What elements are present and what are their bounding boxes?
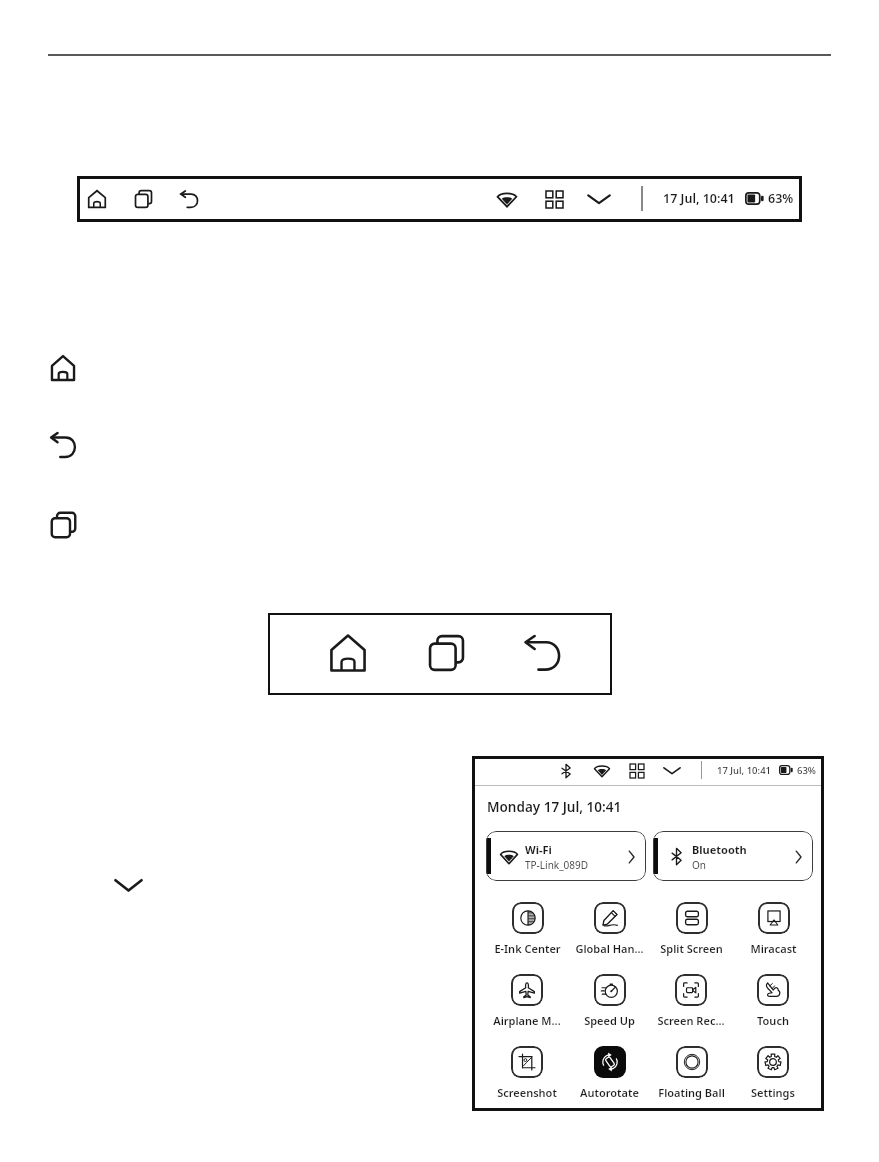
button[interactable]: Expand quick settings: [106, 863, 151, 907]
button[interactable]: Bluetooth: [554, 758, 578, 783]
button[interactable]: Home: [39, 343, 87, 393]
button[interactable]: Wi-Fi: [491, 183, 523, 215]
button[interactable]: Airplane M...: [487, 974, 567, 1032]
staticText: Airplane M...: [493, 1013, 561, 1028]
other: Open: [627, 850, 636, 864]
button[interactable]: Recent apps: [127, 183, 159, 215]
button[interactable]: Recent apps: [418, 625, 474, 681]
button[interactable]: Floating Ball: [651, 1046, 731, 1104]
staticText: Screen Rec...: [657, 1013, 725, 1028]
other: Battery 63 percent: [745, 192, 764, 205]
staticText: Settings: [751, 1085, 795, 1100]
staticText: Autorotate: [580, 1085, 639, 1100]
other: Wi-Fi: [500, 849, 518, 864]
staticText: Floating Ball: [658, 1085, 725, 1100]
button[interactable]: All apps: [538, 183, 570, 215]
staticText: Screenshot: [497, 1085, 557, 1100]
button[interactable]: Autorotate: [569, 1046, 649, 1104]
staticText: Speed Up: [584, 1013, 635, 1028]
other: Bluetooth: [671, 848, 682, 865]
staticText: 17 Jul, 10:41: [663, 190, 735, 207]
other: Open: [794, 850, 803, 864]
button[interactable]: Recent apps: [39, 500, 87, 550]
button[interactable]: Global Han...: [569, 902, 649, 960]
button[interactable]: Collapse quick settings: [660, 758, 684, 783]
button[interactable]: Touch: [733, 974, 813, 1032]
button[interactable]: Speed Up: [569, 974, 649, 1032]
staticText: E-Ink Center: [494, 941, 561, 956]
button[interactable]: Home: [81, 183, 113, 215]
staticText: 63%: [797, 764, 816, 777]
staticText: 63%: [768, 190, 794, 207]
staticText: Touch: [757, 1013, 789, 1028]
button[interactable]: E-Ink Center: [487, 902, 567, 960]
button[interactable]: Screen Rec...: [651, 974, 731, 1032]
button[interactable]: Back: [173, 183, 205, 215]
other: Battery 63 percent: [779, 765, 793, 775]
staticText: Split Screen: [660, 941, 723, 956]
staticText: Monday 17 Jul, 10:41: [487, 798, 622, 816]
staticText: Global Han...: [575, 941, 644, 956]
staticText: TP-Link_089D: [525, 858, 589, 872]
button[interactable]: Miracast: [733, 902, 813, 960]
button[interactable]: Bluetooth: [653, 831, 813, 881]
staticText: On: [692, 858, 706, 872]
staticText: 17 Jul, 10:41: [717, 764, 771, 777]
staticText: Wi-Fi: [525, 842, 552, 857]
button[interactable]: Home: [77, 176, 802, 222]
button[interactable]: Expand quick settings: [583, 183, 615, 215]
staticText: Miracast: [750, 941, 797, 956]
button[interactable]: Back: [515, 625, 571, 681]
button[interactable]: Screenshot: [487, 1046, 567, 1104]
staticText: Bluetooth: [692, 842, 747, 857]
button[interactable]: Wi-Fi: [486, 831, 646, 881]
button[interactable]: Wi-Fi: [590, 758, 614, 783]
button[interactable]: All apps: [625, 758, 649, 783]
button[interactable]: Split Screen: [651, 902, 731, 960]
button[interactable]: Home: [320, 625, 376, 681]
button[interactable]: Back: [39, 421, 87, 470]
button[interactable]: Settings: [733, 1046, 813, 1104]
